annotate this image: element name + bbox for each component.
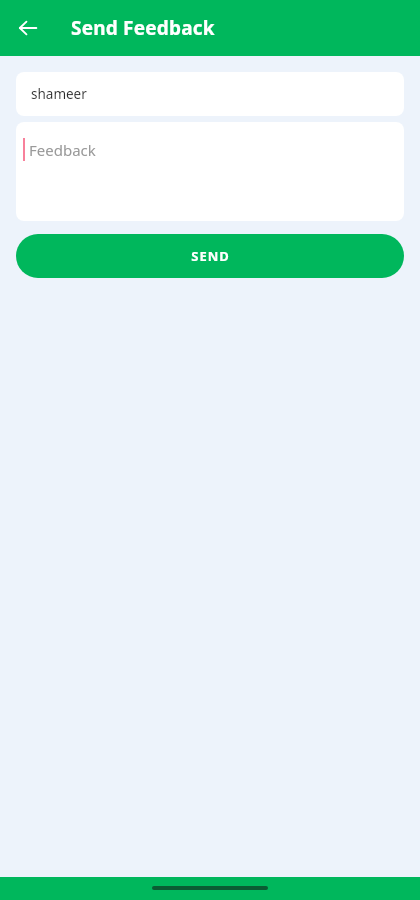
staticText: SEND [191,247,230,265]
button[interactable]: Back [8,8,48,48]
button[interactable]: Feedback [16,122,404,221]
staticText: Send Feedback [71,15,215,41]
button[interactable]: shameer [16,72,404,116]
staticText: Feedback [29,140,96,160]
button[interactable]: SEND [16,234,404,278]
staticText: shameer [31,85,87,103]
